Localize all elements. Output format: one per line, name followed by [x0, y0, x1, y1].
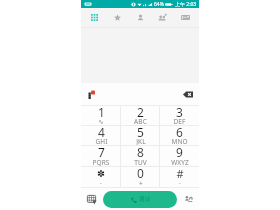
button[interactable]: Keypad	[85, 8, 104, 27]
staticText: JKL	[136, 137, 146, 146]
staticText: 3	[176, 104, 183, 120]
button[interactable]: Favorites	[108, 8, 127, 27]
staticText: MNO	[171, 137, 188, 146]
button[interactable]: #	[160, 167, 199, 187]
button[interactable]: Backspace	[180, 86, 196, 102]
staticText: 7	[98, 144, 105, 160]
button[interactable]: 6	[160, 126, 199, 145]
staticText: 0	[137, 165, 144, 181]
staticText: ∿	[98, 118, 104, 126]
staticText: 5	[137, 124, 144, 140]
staticText: ABC	[134, 117, 147, 126]
staticText: 64%	[154, 1, 164, 8]
staticText: WXYZ	[171, 158, 189, 167]
button[interactable]: 5	[121, 126, 160, 145]
button[interactable]: Video call	[181, 191, 197, 207]
button[interactable]: More options	[84, 86, 100, 102]
button[interactable]: 8	[121, 146, 160, 166]
staticText: ·	[179, 179, 181, 188]
staticText: 6	[176, 124, 183, 140]
staticText: 1	[98, 104, 105, 120]
staticText: 9	[176, 144, 183, 160]
button[interactable]: Call log	[176, 8, 195, 27]
staticText: 2	[137, 104, 144, 120]
staticText: 4	[98, 124, 105, 140]
button[interactable]: Contacts	[131, 8, 150, 27]
staticText: PQRS	[92, 158, 110, 167]
button[interactable]: Hide keypad	[83, 191, 99, 207]
button[interactable]: 9	[160, 146, 199, 166]
staticText: 8	[137, 144, 144, 160]
button[interactable]: Groups	[153, 8, 172, 27]
staticText: DEF	[173, 117, 186, 126]
button[interactable]: 3	[160, 106, 199, 125]
button[interactable]: 0	[121, 167, 160, 187]
staticText: 上午 2:03	[175, 1, 197, 8]
button[interactable]: 1	[81, 106, 121, 125]
staticText: ·	[100, 179, 102, 188]
staticText: #	[176, 166, 184, 181]
staticText: 通话	[139, 196, 150, 203]
button[interactable]: 2	[121, 106, 160, 125]
button[interactable]: 通话	[103, 191, 177, 208]
button[interactable]: 4	[81, 126, 121, 145]
button[interactable]: ✽	[81, 167, 121, 187]
staticText: ✽	[97, 168, 105, 179]
staticText: GHI	[95, 137, 108, 146]
staticText: +	[139, 179, 143, 188]
button[interactable]: 7	[81, 146, 121, 166]
staticText: TUV	[134, 158, 147, 167]
